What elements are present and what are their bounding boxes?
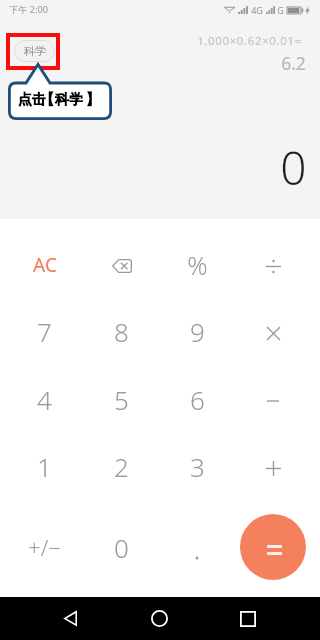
staticText: 【 — [40, 91, 54, 109]
staticText: 4G — [251, 4, 263, 16]
staticText: 科学 — [55, 91, 83, 109]
button[interactable] — [235, 298, 311, 364]
staticText: 下午 2:00 — [9, 3, 48, 16]
staticText: 7 — [37, 314, 52, 349]
staticText: 3 — [190, 449, 205, 484]
button[interactable]: Equals — [240, 514, 306, 580]
button[interactable]: AC — [6, 232, 82, 298]
button[interactable]: Home — [135, 597, 183, 640]
button[interactable]: 5 — [83, 366, 159, 432]
button[interactable]: % — [159, 232, 235, 298]
staticText: AC — [33, 252, 57, 278]
staticText: 6 — [190, 382, 205, 417]
button[interactable]: Recents — [224, 597, 272, 640]
button[interactable]: Divide — [235, 232, 311, 298]
staticText: +/− — [28, 532, 61, 562]
staticText: 0 — [114, 530, 129, 565]
staticText: 科学 — [24, 44, 46, 58]
staticText: 2 — [114, 449, 129, 484]
button[interactable]: 2 — [83, 433, 159, 499]
button[interactable]: Backspace — [83, 232, 159, 298]
staticText: 1,000×0.62×0.01= — [197, 33, 302, 49]
button[interactable] — [159, 514, 235, 580]
staticText: 6.2 — [281, 51, 306, 75]
staticText: 4 — [37, 382, 52, 417]
staticText: 8 — [114, 314, 129, 349]
button[interactable]: Back — [46, 597, 94, 640]
button[interactable]: +/− — [6, 514, 82, 580]
button[interactable]: 3 — [159, 433, 235, 499]
other: Divide — [266, 260, 281, 273]
staticText: 9 — [190, 314, 205, 349]
button[interactable]: 0 — [83, 514, 159, 580]
staticText: 1 — [37, 449, 52, 484]
staticText: 】 — [86, 91, 100, 109]
staticText: 0 — [280, 136, 307, 199]
button[interactable] — [235, 366, 311, 432]
staticText: % — [187, 248, 208, 282]
staticText: 点击 — [18, 91, 46, 109]
button[interactable]: 9 — [159, 298, 235, 364]
staticText: G — [277, 4, 284, 16]
button[interactable]: 7 — [6, 298, 82, 364]
other: Backspace — [112, 259, 132, 273]
button[interactable]: 科学 — [14, 40, 55, 62]
button[interactable]: 6 — [159, 366, 235, 432]
button[interactable]: 8 — [83, 298, 159, 364]
button[interactable]: 1 — [6, 433, 82, 499]
staticText: 5 — [114, 382, 129, 417]
button[interactable] — [235, 433, 311, 499]
button[interactable]: 4 — [6, 366, 82, 432]
